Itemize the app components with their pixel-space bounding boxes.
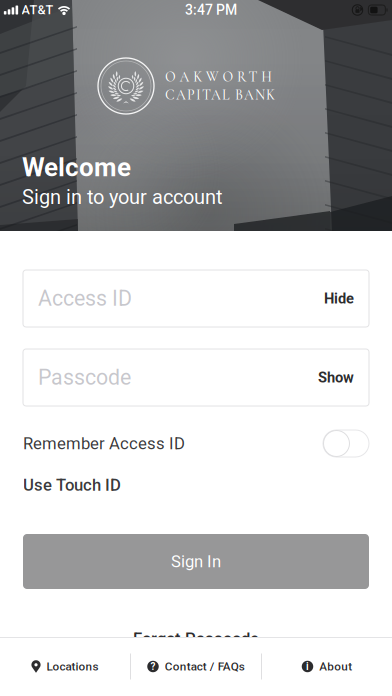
staticText: OAKWORTH (165, 68, 272, 85)
staticText: i (306, 661, 309, 672)
button[interactable]: Remember Access ID (323, 430, 369, 457)
staticText: Welcome (22, 152, 131, 183)
staticText: ? (150, 661, 155, 672)
staticText: Sign In (171, 552, 221, 571)
staticText: AT&T (21, 3, 53, 17)
button[interactable]: Hide (314, 280, 354, 317)
staticText: Sign in to your account (22, 186, 223, 209)
staticText: Access ID (38, 286, 132, 311)
button[interactable]: Forgot Passcode (23, 629, 369, 648)
staticText: Passcode (38, 365, 131, 390)
staticText: Show (318, 369, 354, 386)
staticText: Remember Access ID (23, 434, 185, 453)
staticText: Use Touch ID (23, 475, 121, 495)
button[interactable]: Show (308, 359, 354, 396)
staticText: Hide (324, 290, 354, 307)
button[interactable]: ? (131, 637, 261, 695)
button[interactable]: Sign In (23, 534, 369, 589)
staticText: 3:47 PM (185, 2, 237, 18)
staticText: Locations (47, 660, 99, 673)
staticText: CAPITAL BANK (165, 86, 275, 103)
staticText: Contact / FAQs (165, 660, 245, 673)
staticText: About (319, 660, 352, 673)
button[interactable]: Locations (0, 637, 130, 695)
staticText: Forgot Passcode (133, 629, 259, 648)
button[interactable]: i (262, 637, 392, 695)
